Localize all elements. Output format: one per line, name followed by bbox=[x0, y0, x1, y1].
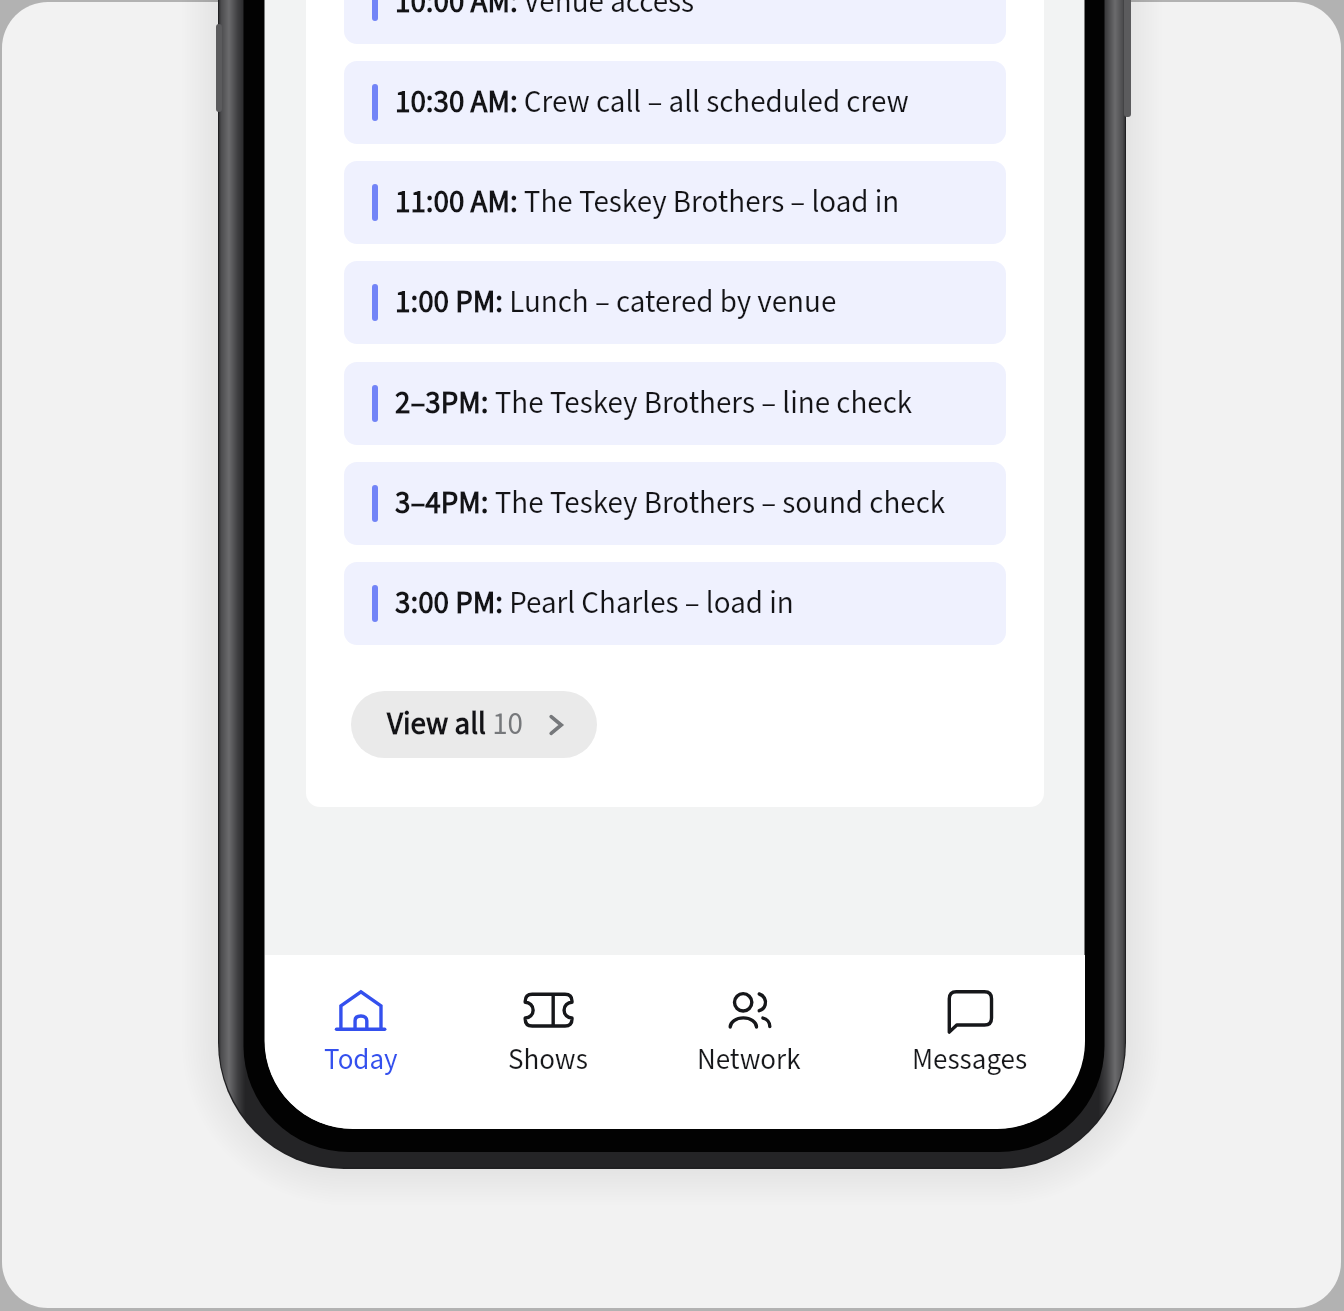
button[interactable]: 3–4PM: The Teskey Brothers – sound check bbox=[344, 462, 1006, 545]
button[interactable]: 10:00 AM: Venue access bbox=[344, 0, 1006, 44]
staticText: Messages bbox=[912, 1041, 1028, 1079]
staticText: Today bbox=[324, 1041, 398, 1079]
button[interactable]: 3:00 PM: Pearl Charles – load in bbox=[344, 562, 1006, 645]
button[interactable]: 10:30 AM: Crew call – all scheduled crew bbox=[344, 61, 1006, 144]
staticText: 11:00 AM: The Teskey Brothers – load in bbox=[395, 183, 900, 223]
staticText: 2–3PM: The Teskey Brothers – line check bbox=[395, 384, 913, 424]
staticText: 3–4PM: The Teskey Brothers – sound check bbox=[395, 484, 946, 524]
button[interactable]: Messages tab bbox=[884, 955, 1056, 1129]
staticText: View all 10 bbox=[387, 705, 524, 745]
button[interactable]: Today tab bbox=[287, 955, 434, 1129]
button[interactable]: 1:00 PM: Lunch – catered by venue bbox=[344, 261, 1006, 344]
staticText: 10:00 AM: Venue access bbox=[395, 0, 695, 23]
button[interactable]: Network tab bbox=[671, 955, 826, 1129]
staticText: 10:30 AM: Crew call – all scheduled crew bbox=[395, 83, 909, 123]
button[interactable]: Shows tab bbox=[474, 955, 621, 1129]
staticText: 3:00 PM: Pearl Charles – load in bbox=[395, 584, 794, 624]
staticText: Network bbox=[697, 1041, 801, 1079]
button[interactable]: 11:00 AM: The Teskey Brothers – load in bbox=[344, 161, 1006, 244]
staticText: 1:00 PM: Lunch – catered by venue bbox=[395, 283, 837, 323]
button[interactable]: 2–3PM: The Teskey Brothers – line check bbox=[344, 362, 1006, 445]
button[interactable]: View all 10 bbox=[351, 691, 597, 758]
staticText: Shows bbox=[508, 1041, 588, 1079]
